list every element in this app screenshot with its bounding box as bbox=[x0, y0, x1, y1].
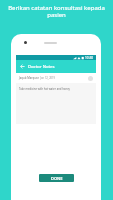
staticText: Doctor Notes bbox=[28, 64, 55, 70]
staticText: Jaqub Marquez bbox=[19, 76, 39, 80]
button[interactable]: More options bbox=[88, 76, 93, 81]
staticText: 10:30 bbox=[85, 56, 94, 60]
staticText: Take medicine with hot water and honey bbox=[19, 87, 70, 91]
staticText: Jan 12, 2019 bbox=[39, 76, 56, 80]
staticText: Berikan catatan konsultasi kepada pasien bbox=[6, 4, 107, 19]
button[interactable]: Back bbox=[16, 60, 28, 73]
staticText: DONE bbox=[51, 176, 63, 181]
button[interactable]: DONE bbox=[39, 174, 74, 182]
